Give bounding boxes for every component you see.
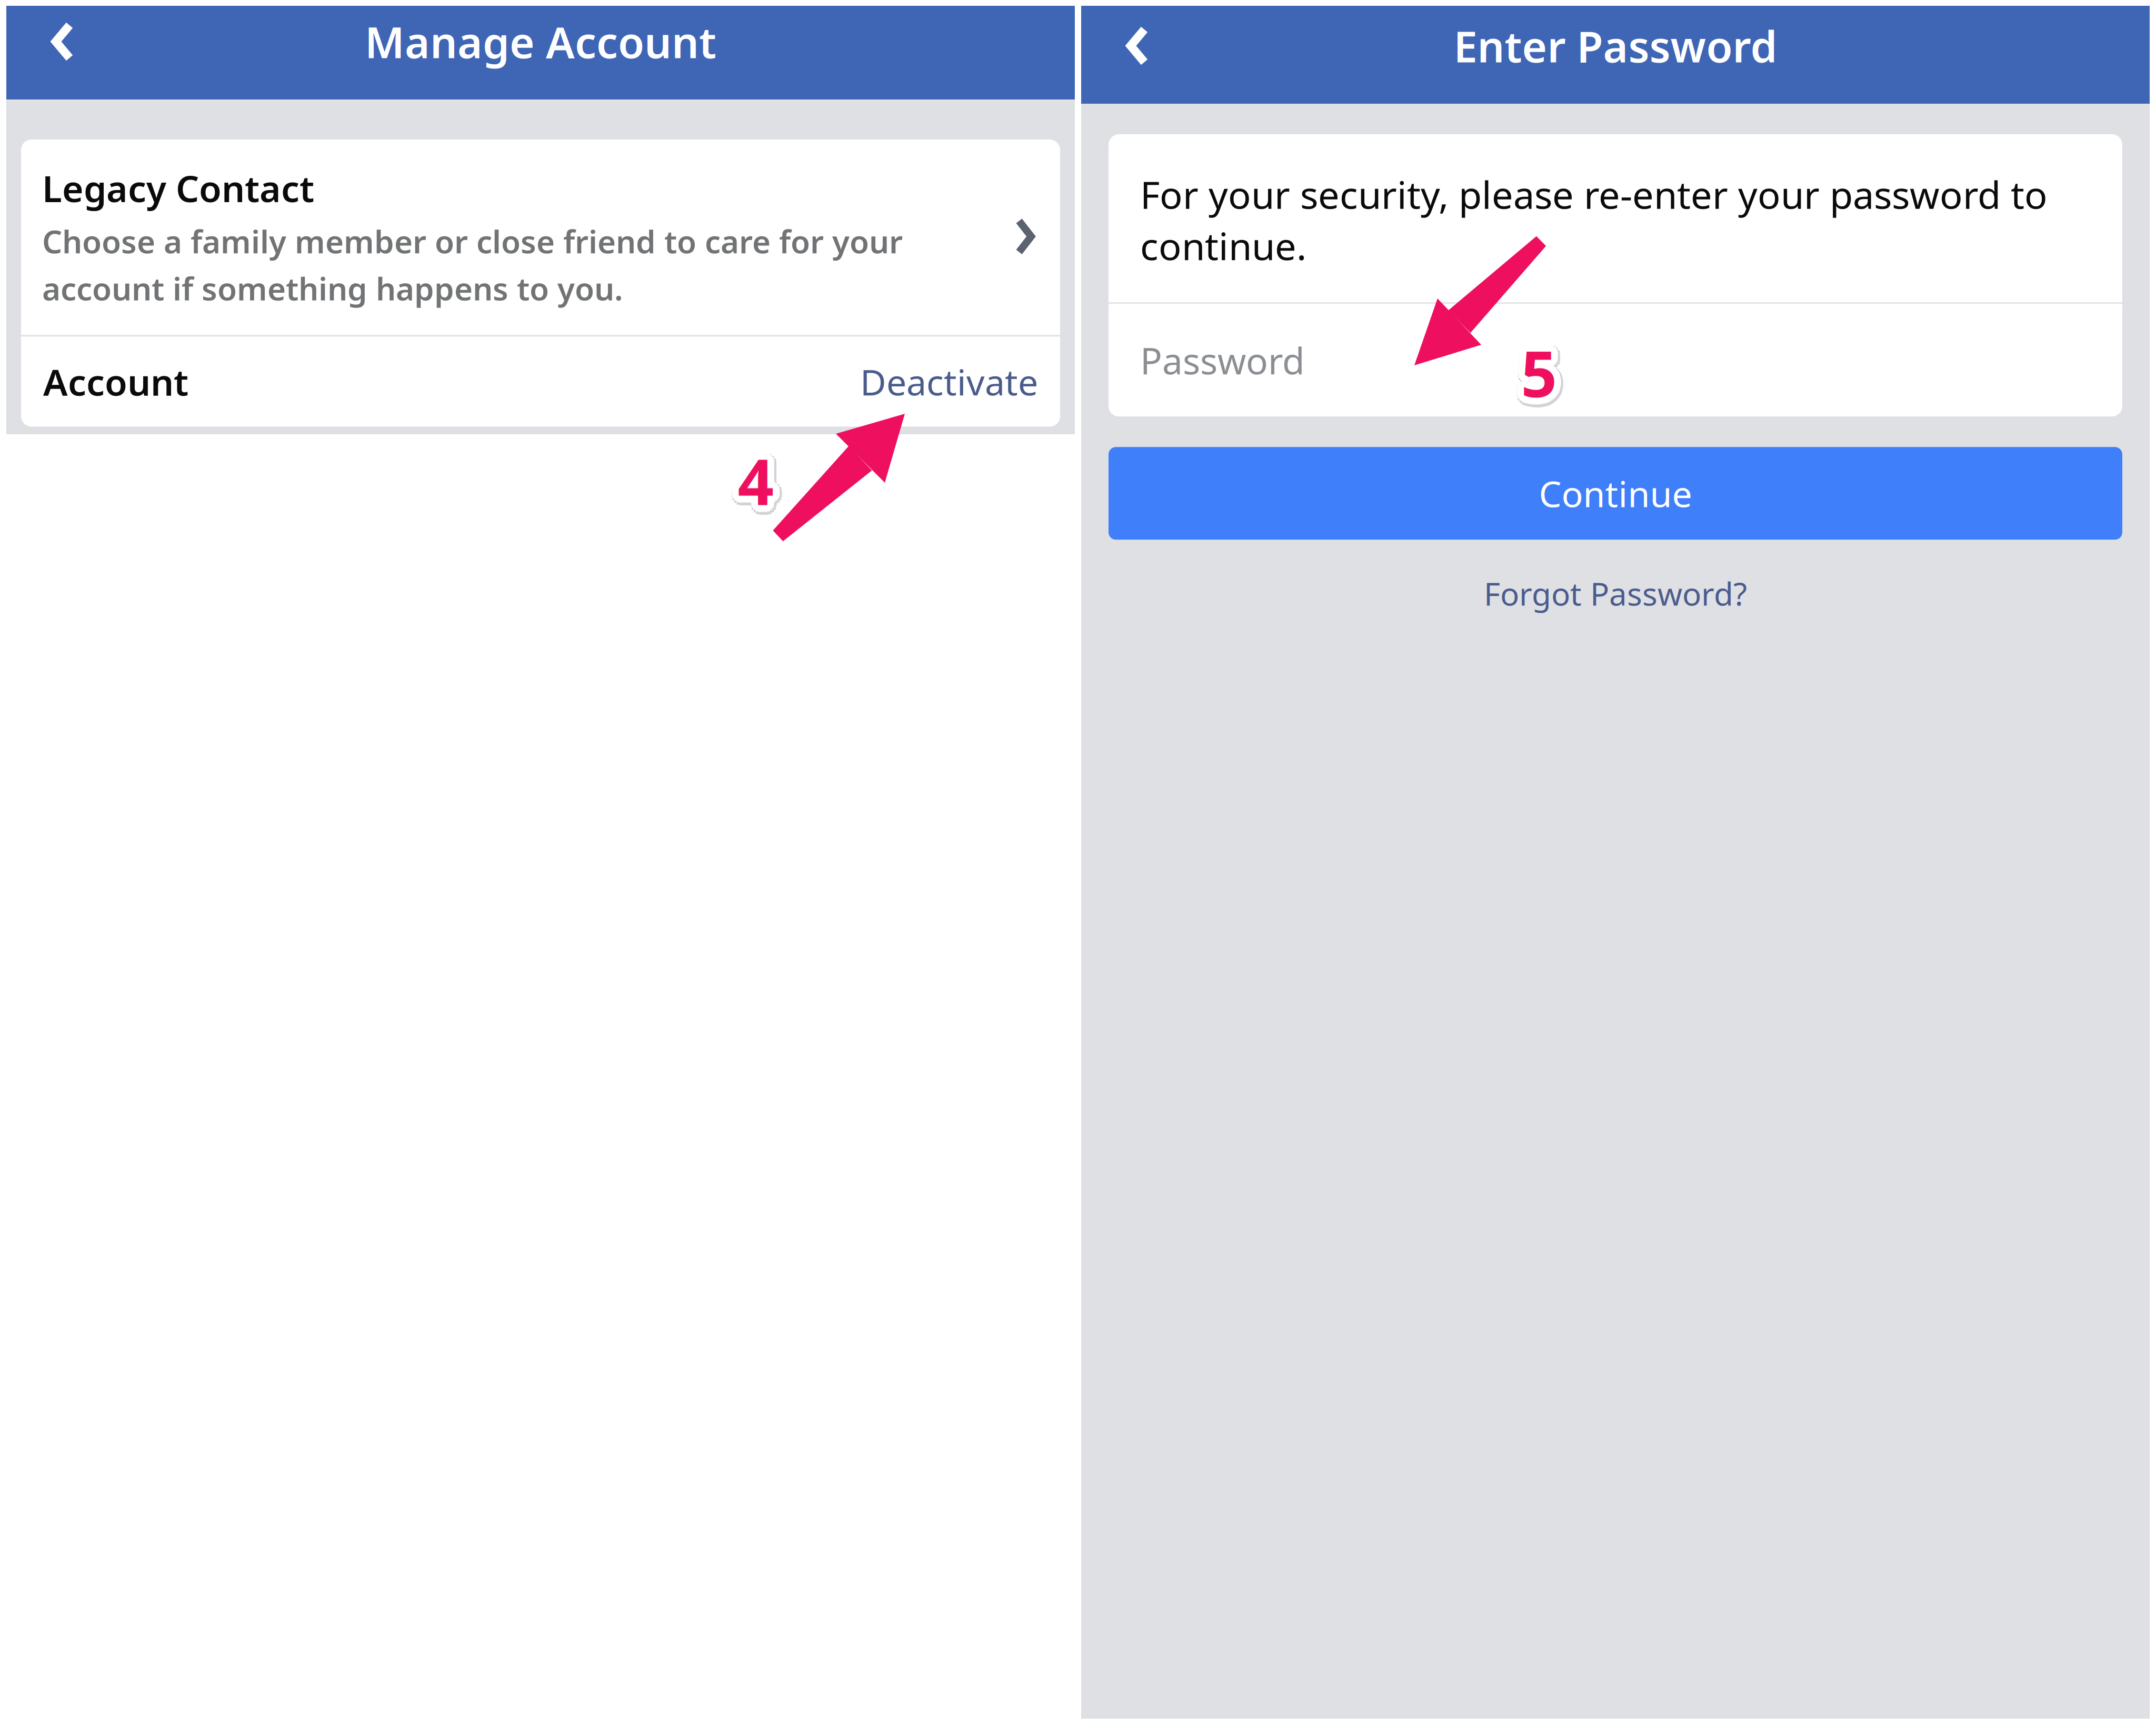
staticText: 4 — [739, 432, 775, 516]
staticText: 5 — [1527, 333, 1564, 417]
staticText: 4 — [735, 432, 771, 516]
button[interactable]: Back — [18, 6, 107, 77]
staticText: 4 — [739, 448, 775, 532]
staticText: 4 — [740, 432, 777, 516]
staticText: 4 — [731, 436, 768, 520]
staticText: 5 — [1515, 333, 1551, 417]
staticText: 5 — [1514, 331, 1550, 415]
button[interactable]: Continue — [1109, 447, 2122, 540]
staticText: 5 — [1524, 324, 1560, 408]
staticText: 5 — [1528, 327, 1564, 411]
staticText: 4 — [733, 446, 769, 530]
staticText: Continue — [1539, 470, 1692, 517]
staticText: Password — [1140, 336, 1305, 384]
staticText: 4 — [731, 440, 767, 524]
staticText: 5 — [1529, 335, 1566, 419]
staticText: Account — [43, 357, 188, 406]
staticText: 4 — [747, 440, 783, 524]
staticText: 5 — [1518, 324, 1555, 408]
staticText: 4 — [733, 435, 769, 519]
staticText: Deactivate — [860, 358, 1038, 405]
staticText: 5 — [1530, 332, 1566, 416]
staticText: 4 — [735, 445, 771, 529]
staticText: Choose a family member or close friend t… — [42, 220, 903, 309]
staticText: 5 — [1524, 337, 1560, 421]
staticText: 5 — [1515, 329, 1551, 413]
button[interactable]: Password — [1109, 304, 2122, 416]
staticText: 4 — [744, 446, 781, 530]
staticText: 5 — [1525, 340, 1561, 424]
staticText: 4 — [746, 437, 783, 521]
button[interactable]: Account — [21, 337, 1060, 427]
staticText: 4 — [731, 437, 768, 521]
staticText: 4 — [738, 432, 774, 516]
staticText: 4 — [742, 434, 779, 518]
staticText: 5 — [1522, 324, 1558, 408]
staticText: 4 — [738, 439, 774, 523]
staticText: 4 — [742, 448, 778, 532]
staticText: 5 — [1514, 332, 1550, 416]
staticText: 4 — [738, 445, 774, 529]
staticText: 4 — [742, 433, 778, 517]
staticText: 4 — [736, 433, 772, 517]
staticText: 4 — [736, 448, 772, 532]
staticText: 5 — [1516, 326, 1553, 410]
staticText: Enter Password — [1454, 17, 1777, 74]
staticText: 5 — [1515, 328, 1551, 412]
staticText: 5 — [1519, 325, 1555, 409]
staticText: Legacy Contact — [42, 164, 314, 212]
button[interactable]: Legacy Contact — [21, 139, 1060, 335]
staticText: 4 — [733, 443, 769, 527]
staticText: 5 — [1526, 326, 1562, 410]
button[interactable]: Back — [1093, 6, 1182, 86]
staticText: Forgot Password? — [1484, 572, 1747, 614]
staticText: 5 — [1519, 340, 1555, 424]
staticText: 4 — [745, 439, 781, 523]
staticText: 5 — [1528, 331, 1564, 415]
staticText: 5 — [1516, 327, 1553, 411]
staticText: 5 — [1526, 335, 1562, 419]
staticText: 5 — [1528, 338, 1564, 422]
staticText: 5 — [1521, 324, 1557, 408]
staticText: 5 — [1521, 338, 1557, 421]
staticText: 4 — [731, 441, 768, 525]
staticText: 4 — [740, 445, 777, 529]
staticText: 4 — [731, 439, 767, 523]
staticText: 5 — [1529, 329, 1566, 413]
staticText: 5 — [1521, 331, 1557, 415]
staticText: 5 — [1522, 340, 1558, 424]
staticText: 5 — [1527, 328, 1564, 412]
staticText: 4 — [742, 443, 779, 527]
staticText: 4 — [744, 441, 780, 525]
staticText: 5 — [1516, 335, 1553, 419]
button[interactable]: Forgot Password? — [1109, 562, 2122, 625]
staticText: 4 — [744, 436, 780, 520]
staticText: 5 — [1518, 337, 1555, 421]
staticText: 4 — [744, 435, 781, 519]
staticText: 5 — [1515, 335, 1551, 419]
staticText: 4 — [746, 443, 783, 527]
staticText: 5 — [1516, 338, 1553, 422]
staticText: For your security, please re-enter your … — [1140, 169, 2048, 271]
staticText: 5 — [1525, 325, 1561, 409]
staticText: 4 — [731, 443, 768, 527]
staticText: 4 — [733, 434, 769, 518]
staticText: Manage Account — [365, 13, 716, 70]
